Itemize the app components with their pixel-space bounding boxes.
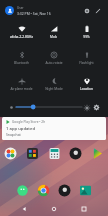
button[interactable]: 99% [70,20,103,46]
button[interactable]: Settings [81,5,92,16]
button[interactable]: Decrease brightness [7,103,16,112]
staticText: Bluetooth [14,61,29,65]
button[interactable]: Recent apps [76,202,92,216]
button[interactable]: Increase brightness [82,103,91,112]
button[interactable]: Google Play Store • 2h [2,117,106,140]
button[interactable]: android [16,184,29,197]
button[interactable]: Location [70,72,103,98]
button[interactable]: Night Mode [37,72,70,98]
staticText: User [17,6,24,10]
button[interactable]: photos [4,147,17,160]
button[interactable]: Brightness [16,102,82,112]
button[interactable]: camera [58,184,71,197]
button[interactable]: gallery [79,184,92,197]
button[interactable]: grid [26,147,39,160]
button[interactable]: Edit tiles [92,5,103,16]
button[interactable]: Home [46,202,62,216]
staticText: Location [80,87,93,91]
button[interactable]: camera [69,147,82,160]
staticText: Flashlight [79,61,94,65]
staticText: Airplane mode [10,87,33,91]
staticText: 99% [83,35,90,39]
staticText: Auto-rotate [45,61,63,65]
button[interactable]: calc [48,147,61,160]
staticText: Snapchat [6,132,21,137]
staticText: Mob [50,35,57,39]
button[interactable]: Airplane mode [5,72,37,98]
staticText: 1 app updated [6,126,35,132]
button[interactable]: Auto-rotate [37,46,70,72]
button[interactable]: Mob [37,20,70,46]
staticText: Google Play Store • 2h [12,120,46,124]
button[interactable]: Auto brightness [91,102,101,112]
button[interactable]: chrome [37,184,50,197]
button[interactable]: play [91,147,104,160]
button[interactable]: User account [5,6,14,15]
button[interactable]: wlcka-2-2.8GHz [5,20,37,46]
staticText: wlcka-2-2.8GHz [10,35,33,39]
button[interactable]: Bluetooth [5,46,37,72]
staticText: 3:32 PM • Sat, Nov 16 [17,11,51,16]
button[interactable]: Flashlight [70,46,103,72]
button[interactable]: Back [16,202,32,216]
staticText: Night Mode [45,87,63,91]
